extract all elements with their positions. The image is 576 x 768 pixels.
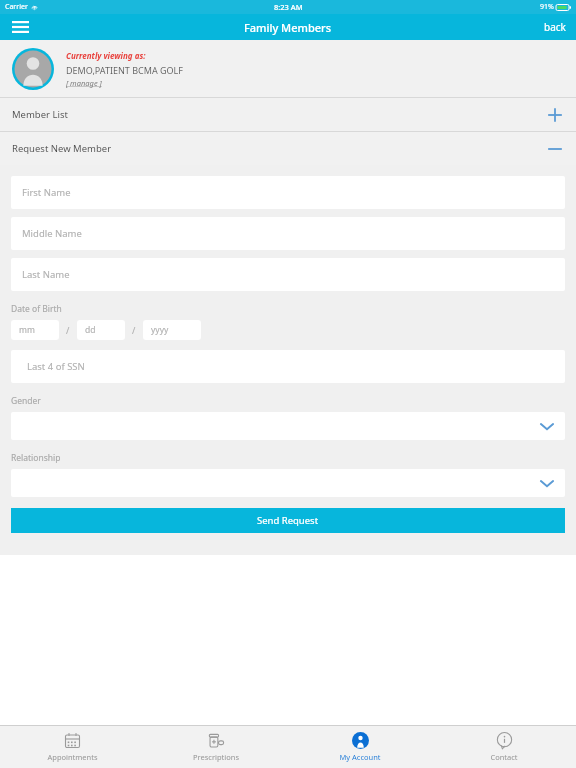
staticText: First Name bbox=[22, 186, 71, 199]
staticText: Last 4 of SSN bbox=[27, 360, 85, 373]
staticText: back bbox=[544, 20, 566, 34]
staticText: My Account bbox=[339, 752, 381, 762]
button[interactable]: Middle Name bbox=[11, 217, 565, 250]
staticText: / bbox=[132, 324, 136, 336]
staticText: 91% bbox=[540, 2, 554, 12]
button[interactable]: Select option bbox=[11, 469, 565, 497]
button[interactable]: back bbox=[544, 20, 566, 34]
staticText: DEMO,PATIENT BCMA GOLF bbox=[66, 64, 183, 76]
staticText: Prescriptions bbox=[193, 752, 239, 762]
staticText: Date of Birth bbox=[11, 303, 62, 315]
staticText: mm bbox=[19, 324, 35, 336]
button[interactable]: [ manage ] bbox=[66, 78, 102, 88]
staticText: Member List bbox=[12, 108, 68, 121]
button[interactable]: mm bbox=[11, 320, 59, 340]
button[interactable]: Last Name bbox=[11, 258, 565, 291]
button[interactable]: First Name bbox=[11, 176, 565, 209]
button[interactable]: Menu bbox=[0, 14, 40, 40]
staticText: [ manage ] bbox=[66, 78, 102, 88]
staticText: yyyy bbox=[151, 324, 169, 336]
button[interactable]: Last 4 of SSN bbox=[11, 350, 565, 383]
staticText: / bbox=[66, 324, 70, 336]
staticText: Send Request bbox=[257, 514, 319, 527]
staticText: Request New Member bbox=[12, 142, 112, 155]
staticText: Family Members bbox=[244, 20, 332, 35]
button[interactable]: Prescriptions bbox=[144, 726, 288, 768]
button[interactable]: Appointments bbox=[0, 726, 144, 768]
staticText: Appointments bbox=[47, 752, 98, 762]
button[interactable]: Request New Member bbox=[0, 132, 576, 165]
staticText: Currently viewing as: bbox=[66, 50, 146, 61]
button[interactable]: Select option bbox=[11, 412, 565, 440]
button[interactable]: yyyy bbox=[143, 320, 201, 340]
staticText: Gender bbox=[11, 395, 41, 407]
button[interactable]: Contact bbox=[432, 726, 576, 768]
staticText: Carrier bbox=[5, 2, 28, 12]
staticText: Last Name bbox=[22, 268, 70, 281]
button[interactable]: Send Request bbox=[11, 508, 565, 533]
staticText: Contact bbox=[490, 752, 518, 762]
staticText: 8:23 AM bbox=[274, 2, 303, 12]
button[interactable]: Member List bbox=[0, 98, 576, 131]
staticText: Middle Name bbox=[22, 227, 82, 240]
staticText: dd bbox=[85, 324, 96, 336]
button[interactable]: My Account bbox=[288, 726, 432, 768]
staticText: Relationship bbox=[11, 452, 61, 464]
button[interactable]: dd bbox=[77, 320, 125, 340]
